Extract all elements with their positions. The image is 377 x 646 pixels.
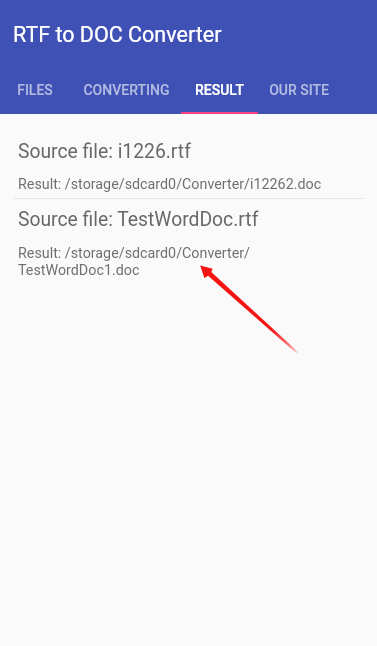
staticText: FILES (17, 82, 53, 98)
button[interactable]: FILES (0, 66, 70, 114)
staticText: RTF to DOC Converter (13, 22, 222, 47)
staticText: CONVERTING (83, 82, 170, 98)
other: Annotation arrow pointing at the result … (0, 0, 377, 646)
button[interactable]: RESULT (183, 66, 255, 114)
button[interactable]: Source file: TestWordDoc.rtf (0, 208, 377, 288)
button[interactable]: CONVERTING (70, 66, 183, 114)
button[interactable]: Source file: i1226.rtf (0, 140, 377, 198)
staticText: Result: /storage/sdcard0/Converter/ Test… (18, 245, 251, 278)
staticText: OUR SITE (269, 82, 329, 98)
staticText: Source file: i1226.rtf (18, 140, 191, 163)
staticText: Result: /storage/sdcard0/Converter/i1226… (18, 176, 322, 193)
button[interactable]: OUR SITE (255, 66, 342, 114)
staticText: Source file: TestWordDoc.rtf (18, 208, 259, 231)
staticText: RESULT (195, 82, 244, 98)
